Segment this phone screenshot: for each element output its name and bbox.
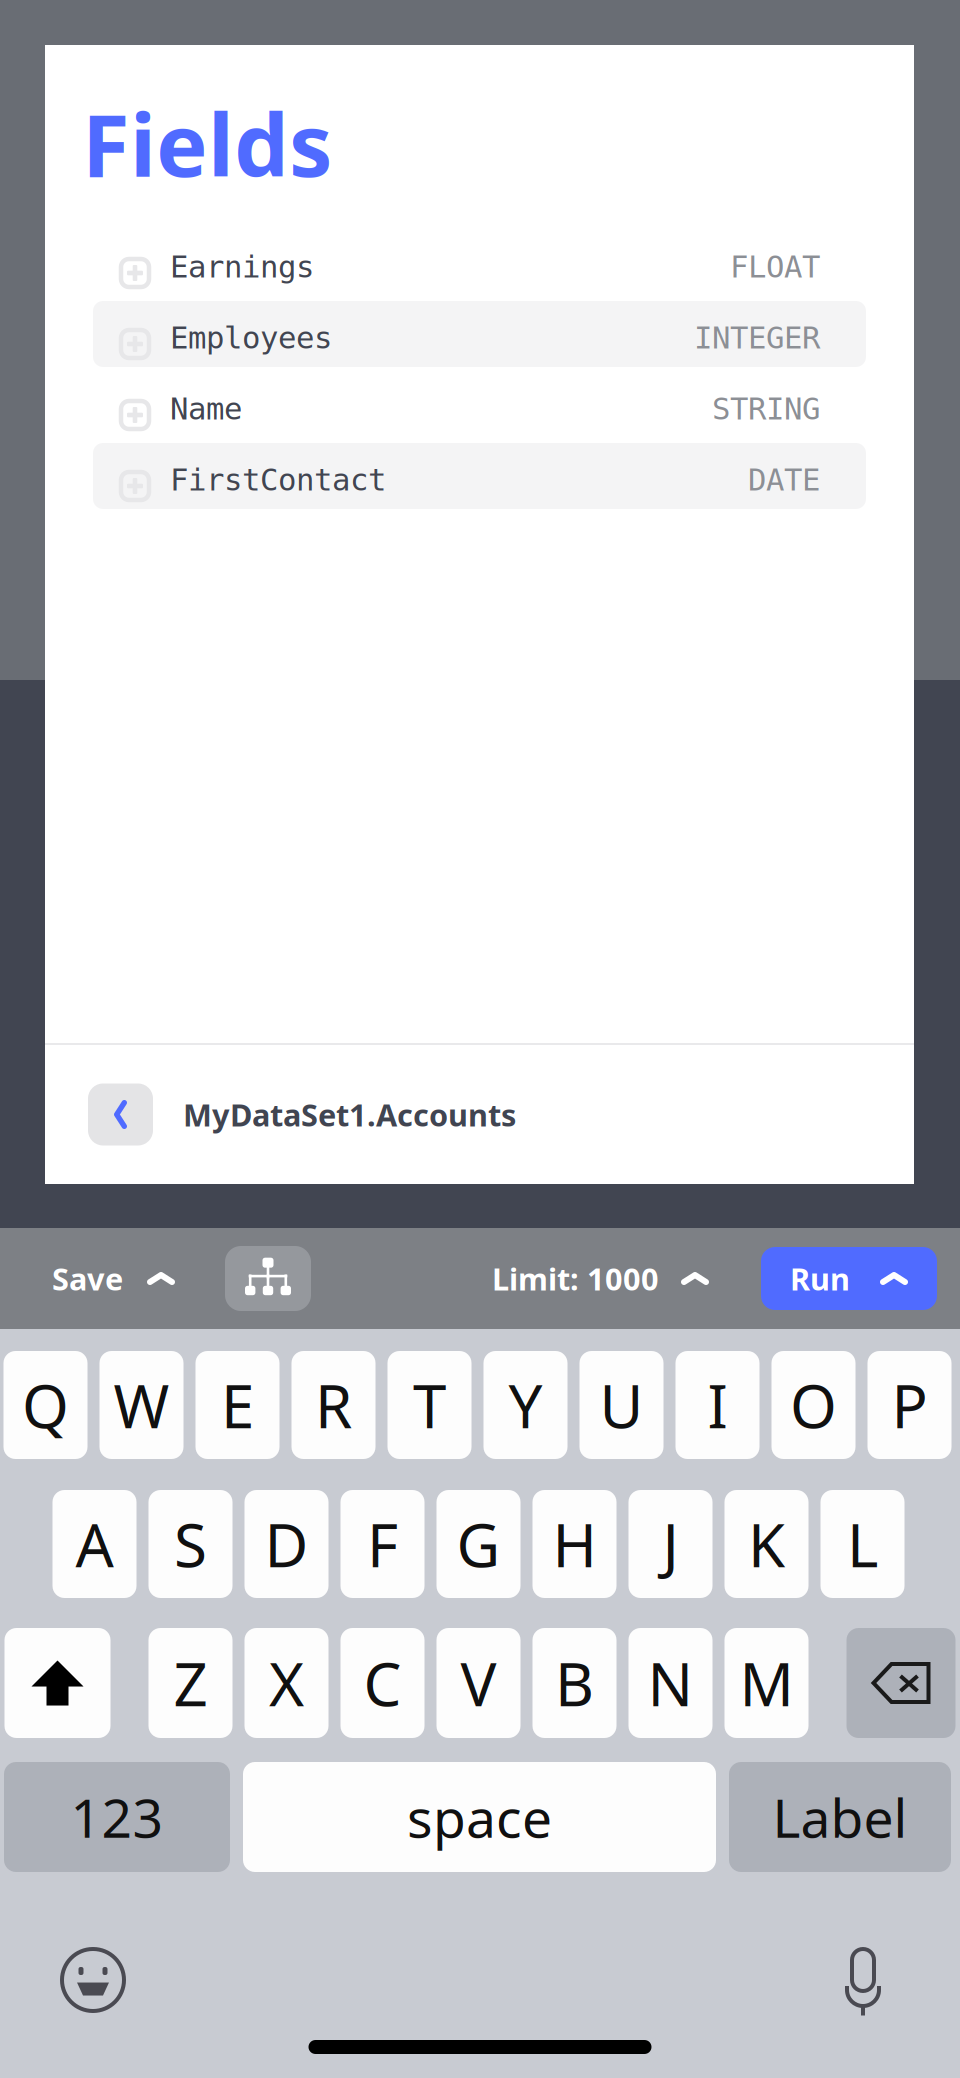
button[interactable]: G (436, 1490, 520, 1598)
staticText: L (847, 1504, 878, 1584)
staticText: 123 (70, 1782, 163, 1852)
button[interactable]: V (436, 1628, 520, 1738)
staticText: N (647, 1643, 693, 1723)
button[interactable]: H (532, 1490, 616, 1598)
staticText: M (739, 1643, 793, 1723)
staticText: J (662, 1504, 678, 1584)
staticText: V (460, 1643, 496, 1723)
button[interactable]: Z (148, 1628, 232, 1738)
button[interactable]: Label (729, 1762, 951, 1872)
staticText: H (552, 1504, 596, 1584)
staticText: Employees (170, 321, 332, 355)
button[interactable]: O (771, 1351, 855, 1459)
button[interactable]: F (340, 1490, 424, 1598)
button[interactable]: Earnings (93, 230, 866, 296)
button[interactable]: W (99, 1351, 183, 1459)
staticText: X (269, 1643, 304, 1723)
button[interactable]: FirstContact (93, 443, 866, 509)
button[interactable]: Emoji (60, 1947, 126, 2013)
staticText: U (599, 1365, 643, 1445)
button[interactable]: S (148, 1490, 232, 1598)
button[interactable]: C (340, 1628, 424, 1738)
staticText: K (748, 1504, 785, 1584)
button[interactable]: Delete (846, 1628, 955, 1738)
button[interactable]: Shift (4, 1628, 110, 1738)
staticText: C (363, 1643, 401, 1723)
staticText: Label (772, 1782, 907, 1852)
staticText: Run (790, 1258, 850, 1299)
button[interactable]: E (195, 1351, 279, 1459)
staticText: DATE (748, 463, 820, 497)
staticText: E (221, 1365, 254, 1445)
button[interactable]: Dictation (843, 1943, 883, 2017)
button[interactable]: L (820, 1490, 904, 1598)
staticText: W (113, 1365, 169, 1445)
staticText: D (264, 1504, 308, 1584)
staticText: FLOAT (730, 250, 820, 284)
button[interactable]: Schema (225, 1246, 311, 1311)
button[interactable]: X (244, 1628, 328, 1738)
staticText: Limit: 1000 (492, 1258, 659, 1299)
staticText: B (555, 1643, 594, 1723)
staticText: Name (170, 392, 242, 426)
button[interactable]: R (291, 1351, 375, 1459)
staticText: STRING (712, 392, 820, 426)
staticText: T (413, 1365, 446, 1445)
staticText: A (75, 1504, 113, 1584)
staticText: MyDataSet1.Accounts (183, 1094, 516, 1135)
button[interactable]: K (724, 1490, 808, 1598)
staticText: R (315, 1365, 352, 1445)
staticText: I (707, 1365, 727, 1445)
button[interactable]: Limit: 1000 (492, 1258, 709, 1299)
staticText: O (790, 1365, 837, 1445)
staticText: P (891, 1365, 927, 1445)
staticText: G (456, 1504, 500, 1584)
staticText: space (407, 1782, 552, 1852)
staticText: FirstContact (170, 463, 386, 497)
button[interactable]: P (867, 1351, 951, 1459)
button[interactable]: Q (3, 1351, 87, 1459)
button[interactable]: Save (52, 1258, 175, 1299)
button[interactable]: U (579, 1351, 663, 1459)
staticText: Earnings (170, 250, 314, 284)
button[interactable]: J (628, 1490, 712, 1598)
button[interactable]: Back (88, 1083, 153, 1145)
button[interactable]: Employees (93, 301, 866, 367)
button[interactable]: N (628, 1628, 712, 1738)
button[interactable]: T (387, 1351, 471, 1459)
staticText: F (367, 1504, 398, 1584)
staticText: INTEGER (694, 321, 820, 355)
staticText: Y (508, 1365, 542, 1445)
staticText: Q (22, 1365, 69, 1445)
button[interactable]: space (243, 1762, 716, 1872)
staticText: Z (173, 1643, 207, 1723)
button[interactable]: M (724, 1628, 808, 1738)
staticText: Fields (82, 85, 333, 201)
button[interactable]: A (52, 1490, 136, 1598)
button[interactable]: Y (483, 1351, 567, 1459)
staticText: Save (52, 1258, 123, 1299)
staticText: S (174, 1504, 207, 1584)
button[interactable]: D (244, 1490, 328, 1598)
button[interactable]: Run (761, 1247, 937, 1310)
button[interactable]: I (675, 1351, 759, 1459)
button[interactable]: 123 (4, 1762, 230, 1872)
button[interactable]: B (532, 1628, 616, 1738)
button[interactable]: Name (93, 372, 866, 438)
